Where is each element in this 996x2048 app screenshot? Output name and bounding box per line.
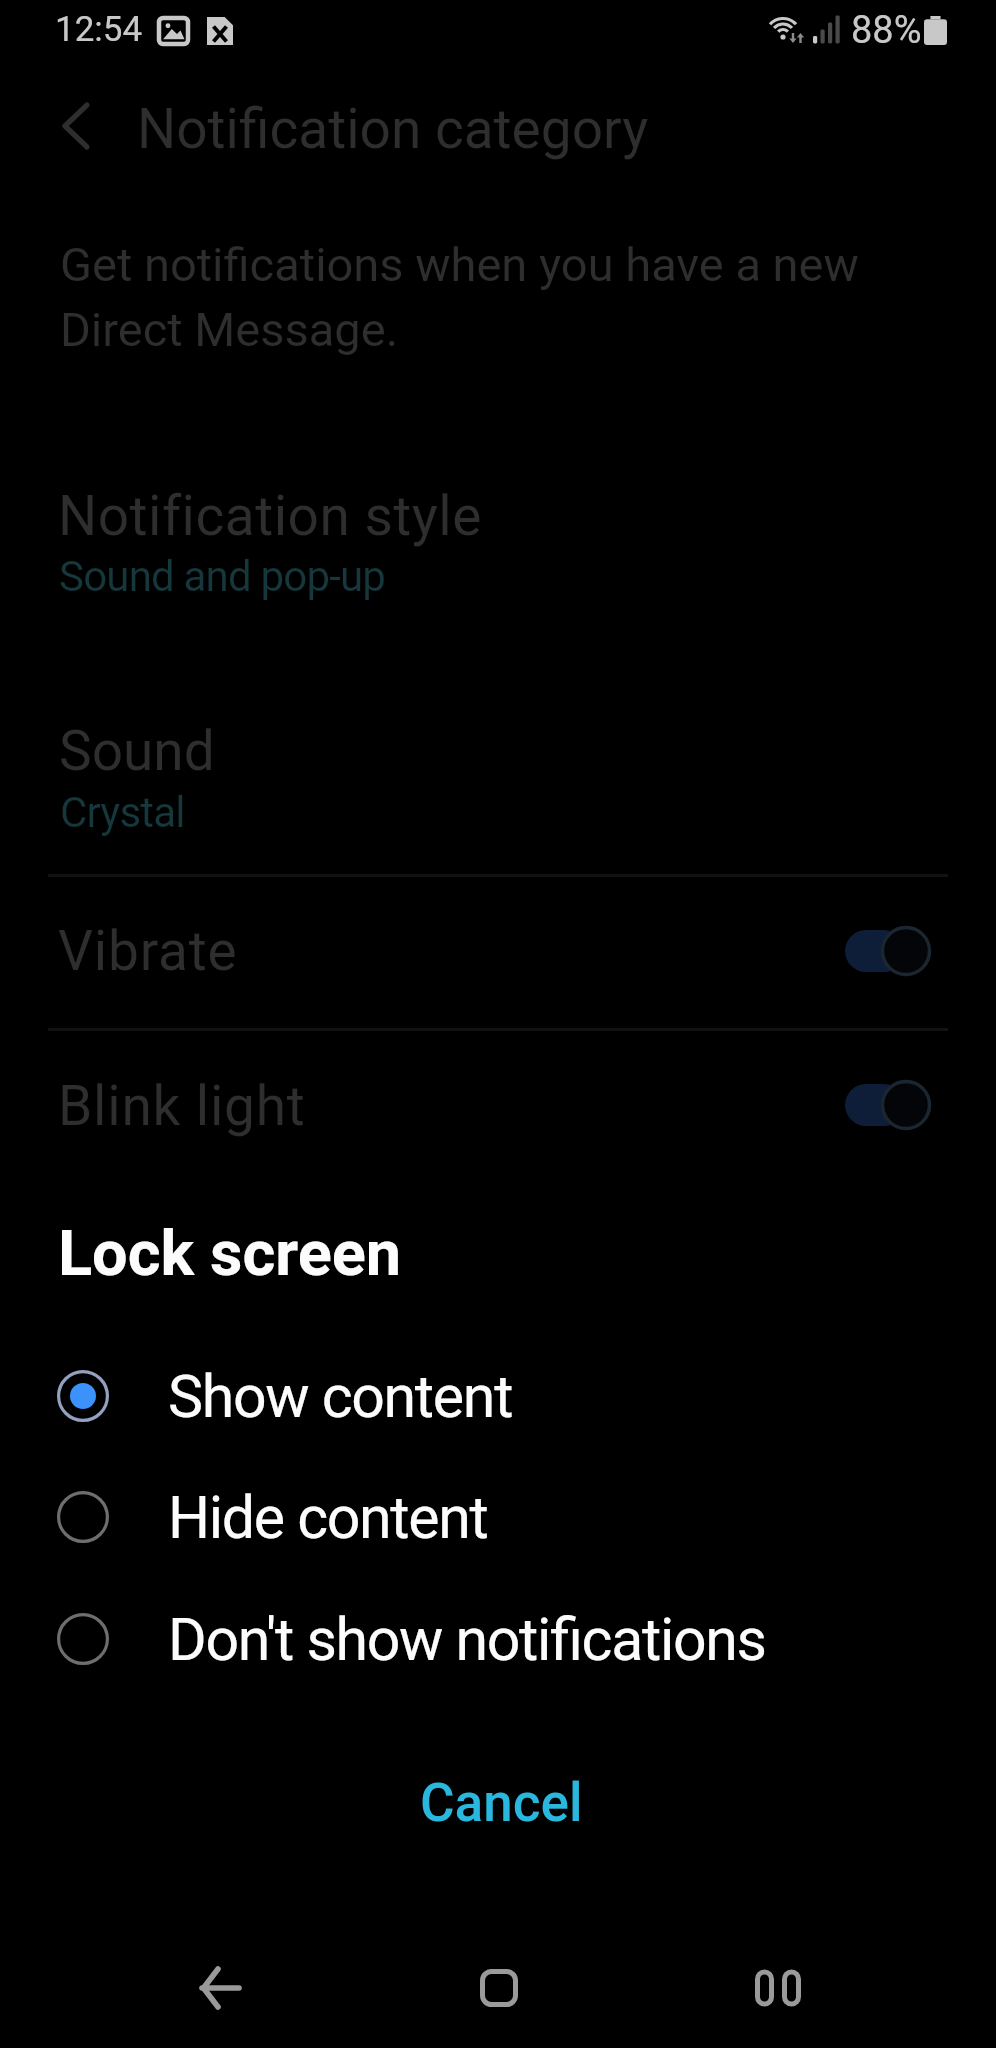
staticText: Crystal	[60, 788, 185, 837]
button[interactable]: Cancel	[0, 1750, 996, 1850]
staticText: Lock screen	[58, 1217, 402, 1291]
button[interactable]: Recent apps	[723, 1933, 833, 2043]
staticText: Hide content	[168, 1483, 488, 1552]
button[interactable]: Hide content	[0, 1452, 996, 1572]
button[interactable]: Vibrate	[0, 874, 996, 1028]
button[interactable]: Sound	[0, 690, 996, 850]
button[interactable]: Notification style	[0, 452, 996, 612]
staticText: Sound and pop-up	[59, 552, 386, 601]
button[interactable]: Back	[165, 1933, 275, 2043]
button[interactable]: Blink light	[0, 1028, 996, 1182]
button[interactable]: Don't show notifications	[0, 1574, 996, 1694]
staticText: Don't show notifications	[168, 1605, 766, 1674]
button[interactable]: Show content	[0, 1332, 996, 1452]
button[interactable]: Navigate up	[38, 88, 114, 164]
staticText: Cancel	[420, 1772, 583, 1834]
staticText: Notification category	[137, 97, 649, 161]
staticText: 12:54	[55, 9, 143, 50]
button[interactable]: Home	[444, 1933, 554, 2043]
staticText: Notification style	[58, 484, 482, 548]
staticText: Blink light	[58, 1074, 306, 1138]
staticText: 88%	[851, 8, 922, 53]
staticText: Get notifications when you have a new Di…	[60, 237, 859, 358]
staticText: Vibrate	[58, 919, 238, 983]
staticText: Sound	[59, 719, 215, 783]
staticText: Show content	[168, 1362, 513, 1431]
